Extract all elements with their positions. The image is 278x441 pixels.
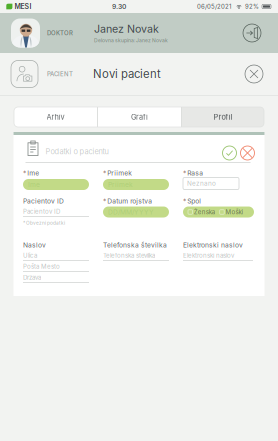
staticText: MESI <box>14 2 31 11</box>
staticText: Ime <box>28 180 40 189</box>
staticText: Neznano <box>187 180 216 187</box>
staticText: Priimek <box>107 169 132 177</box>
staticText: Priimek <box>108 180 133 189</box>
staticText: Arhiv <box>46 113 64 121</box>
staticText: Ženska <box>194 208 215 216</box>
staticText: Elektronski naslov <box>183 252 234 259</box>
button[interactable]: Grafi <box>98 107 181 127</box>
staticText: Profil <box>213 113 232 121</box>
staticText: Telefonska številka <box>103 252 155 259</box>
staticText: Ulica <box>23 252 37 259</box>
staticText: * <box>183 169 186 177</box>
staticText: * <box>23 169 26 177</box>
button[interactable]: Prekliči <box>239 145 255 161</box>
staticText: Rasa <box>187 169 203 177</box>
staticText: Podatki o pacientu <box>45 147 108 156</box>
staticText: Spol <box>187 197 201 205</box>
button[interactable]: Potrdi <box>221 145 237 161</box>
button[interactable]: Arhiv <box>14 107 97 127</box>
staticText: Novi pacient <box>93 67 161 81</box>
staticText: PACIENT <box>47 70 73 78</box>
staticText: * <box>183 197 186 205</box>
staticText: * Obvezni podatki <box>23 220 65 226</box>
staticText: Janez Novak <box>94 22 159 35</box>
staticText: Pacientov ID <box>23 208 60 215</box>
staticText: DD/MM/YYYY <box>108 208 154 216</box>
staticText: Grafi <box>131 113 148 121</box>
staticText: Delovna skupina: Janez Novak <box>94 37 168 43</box>
staticText: Datum rojstva <box>107 197 152 205</box>
staticText: Pošta Mesto <box>23 263 60 270</box>
button[interactable]: Zapri <box>242 62 266 86</box>
staticText: 06/05/2021 <box>197 3 231 10</box>
staticText: * <box>103 197 106 205</box>
staticText: Telefonska številka <box>103 241 167 249</box>
staticText: 92% <box>245 3 259 10</box>
button[interactable]: Odjava <box>241 22 263 44</box>
staticText: 9.30 <box>112 2 126 11</box>
staticText: Naslov <box>23 241 46 249</box>
staticText: Moški <box>225 208 242 216</box>
button[interactable]: Profil <box>182 107 264 127</box>
staticText: Pacientov ID <box>23 197 64 205</box>
staticText: * <box>103 169 106 177</box>
staticText: Država <box>23 274 41 281</box>
staticText: DOKTOR <box>47 29 73 37</box>
staticText: Ime <box>27 169 39 177</box>
staticText: Elektronski naslov <box>183 241 243 249</box>
